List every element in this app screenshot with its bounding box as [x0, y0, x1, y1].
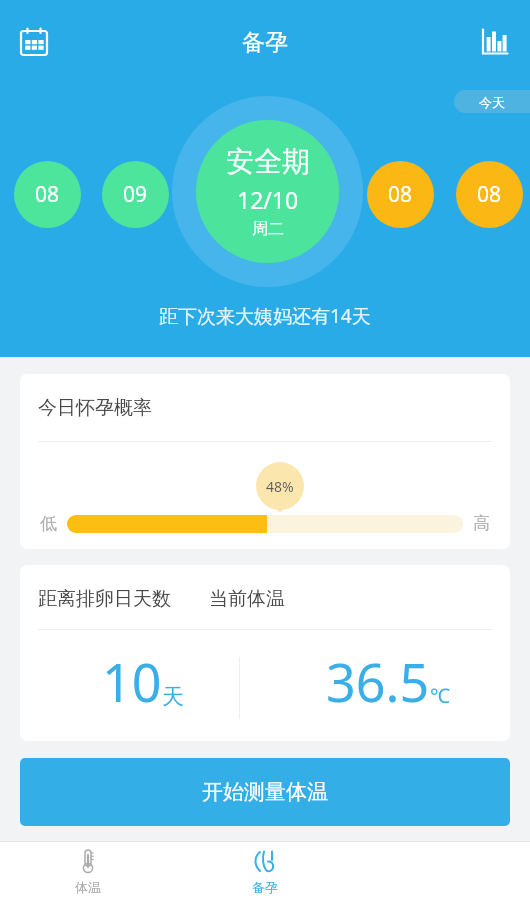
staticText: 09	[123, 180, 148, 209]
staticText: 备孕	[252, 879, 278, 895]
staticText: 今天	[479, 94, 505, 110]
staticText: 10	[102, 646, 162, 717]
button[interactable]: 安全期	[172, 96, 363, 287]
staticText: 高	[473, 513, 490, 534]
button[interactable]: 今天	[454, 90, 530, 113]
staticText: 12/10	[237, 184, 299, 215]
staticText: 距离排卵日天数	[38, 587, 171, 611]
staticText: 低	[40, 513, 57, 534]
staticText: 备孕	[242, 28, 288, 57]
staticText: 体温	[75, 879, 101, 895]
staticText: ℃	[430, 682, 450, 709]
staticText: 距下次来大姨妈还有14天	[159, 303, 371, 329]
staticText: 当前体温	[209, 587, 285, 611]
button[interactable]: 08	[14, 161, 81, 228]
staticText: 08	[477, 180, 502, 209]
staticText: 08	[35, 180, 60, 209]
button[interactable]: 开始测量体温	[20, 758, 510, 826]
button[interactable]: Statistics	[467, 14, 523, 70]
button[interactable]: 09	[102, 161, 169, 228]
button[interactable]: 08	[367, 161, 434, 228]
staticText: 开始测量体温	[202, 779, 328, 805]
staticText: 36.5	[326, 646, 430, 717]
staticText: 48%	[266, 477, 294, 496]
button[interactable]: 08	[456, 161, 523, 228]
button[interactable]: 体温	[0, 842, 176, 900]
button[interactable]: 备孕	[176, 842, 353, 900]
button[interactable]: 今日怀孕概率	[20, 374, 510, 549]
staticText: 周二	[252, 219, 284, 239]
staticText: 天	[162, 683, 184, 711]
staticText: 今日怀孕概率	[38, 396, 152, 420]
staticText: 安全期	[226, 144, 310, 179]
staticText: 08	[388, 180, 413, 209]
button[interactable]: Calendar	[6, 14, 62, 70]
